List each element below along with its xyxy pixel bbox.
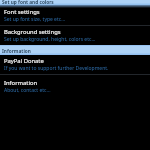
staticText: Information	[4, 79, 38, 87]
button[interactable]: Font settings	[0, 5, 150, 26]
button[interactable]: PayPal Donate	[0, 54, 150, 73]
staticText: If you want to support further Developme…	[4, 65, 109, 72]
staticText: Set up background, height, colors etc...	[4, 36, 96, 43]
staticText: Font settings	[4, 8, 40, 16]
button[interactable]: Information	[0, 45, 150, 55]
staticText: Set up font size, type etc...	[4, 16, 66, 23]
button[interactable]: Information	[0, 76, 150, 96]
button[interactable]: Set up font and colors	[0, 0, 150, 5]
staticText: Information	[2, 48, 31, 54]
staticText: Background settings	[4, 28, 61, 36]
staticText: Set up font and colors	[2, 0, 54, 5]
staticText: About, contact etc...	[4, 87, 51, 94]
staticText: PayPal Donate	[4, 57, 44, 65]
button[interactable]: Background settings	[0, 25, 150, 45]
